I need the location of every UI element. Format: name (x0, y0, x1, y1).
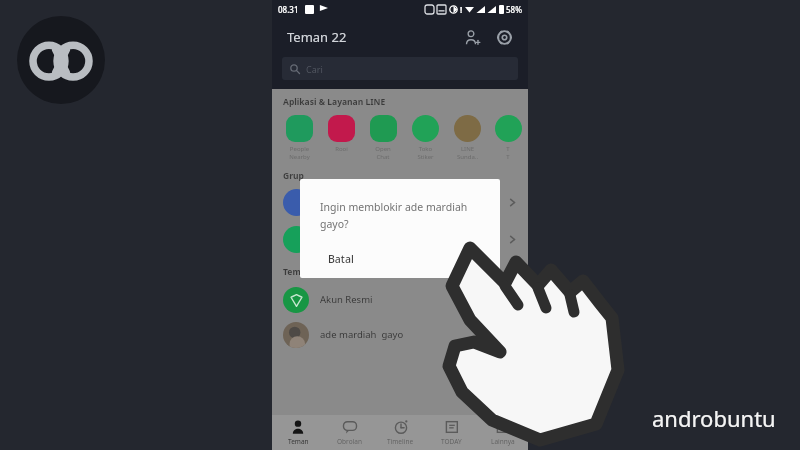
staticText: Toko Stiker (417, 145, 434, 161)
staticText: Aplikasi & Layanan LINE (283, 96, 386, 108)
staticText: People Nearby (289, 145, 310, 161)
button[interactable]: Timeline (375, 415, 426, 450)
staticText: Open Chat (375, 145, 391, 161)
staticText: Akun Resmi (320, 293, 373, 306)
button[interactable]: LINE Sunda.. (446, 115, 488, 161)
other: Tap here (0, 0, 800, 450)
staticText: Teman (288, 437, 309, 446)
button[interactable]: Open Chat (362, 115, 404, 161)
staticText: Obrolan (337, 437, 362, 446)
staticText: OK (461, 252, 476, 266)
button[interactable] (272, 187, 528, 218)
button[interactable]: Androbuntu logo (17, 16, 105, 104)
button[interactable]: Akun Resmi (272, 282, 528, 317)
button[interactable]: Obrolan (324, 415, 375, 450)
staticText: Lainnya (491, 437, 515, 446)
staticText: 08.31 (278, 4, 299, 15)
staticText: Teman 22 (287, 28, 347, 46)
button[interactable]: TODAY (426, 415, 477, 450)
staticText: Grup (283, 170, 304, 182)
staticText: T T (506, 145, 510, 161)
button[interactable]: People Nearby (278, 115, 320, 161)
staticText: ade mardiah gayo (320, 328, 404, 341)
staticText: androbuntu (652, 403, 776, 433)
staticText: Timeline (387, 437, 414, 446)
staticText: Teman 22 (283, 266, 324, 278)
staticText: 58% (506, 4, 522, 15)
staticText: LINE Sunda.. (457, 145, 478, 161)
staticText: Batal (328, 252, 354, 266)
button[interactable]: ade mardiah gayo (272, 317, 528, 352)
button[interactable]: T T (488, 115, 528, 161)
button[interactable]: Cari (282, 57, 518, 80)
staticText: Cari (306, 63, 323, 75)
button[interactable]: OK (452, 247, 485, 271)
button[interactable] (272, 224, 528, 255)
button[interactable]: Rooi (320, 115, 362, 153)
button[interactable]: 4 (477, 415, 528, 450)
button[interactable]: Add friend (458, 23, 486, 51)
staticText: TODAY (441, 437, 462, 446)
button[interactable]: Toko Stiker (404, 115, 446, 161)
staticText: Rooi (335, 145, 348, 153)
button[interactable]: Batal (319, 247, 363, 271)
staticText: ! (460, 4, 463, 15)
button[interactable]: Teman (272, 415, 324, 450)
button[interactable]: Settings (490, 23, 518, 51)
staticText: 4 (509, 416, 513, 424)
staticText: Ingin memblokir ade mardiah gayo? (320, 200, 478, 231)
